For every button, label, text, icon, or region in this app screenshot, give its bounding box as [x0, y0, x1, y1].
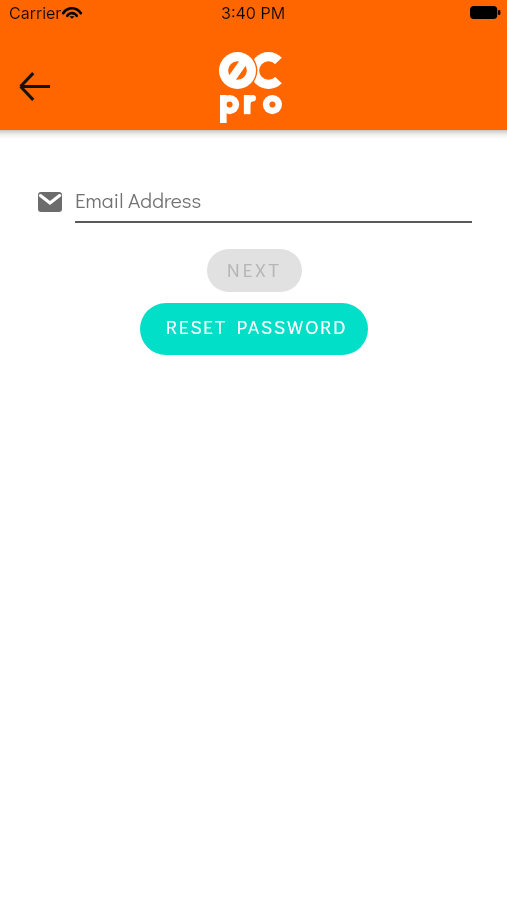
staticText: 3:40 PM — [221, 3, 286, 22]
staticText: NEXT — [227, 257, 282, 282]
button[interactable]: Navigate back — [10, 62, 58, 110]
staticText: Carrier — [9, 3, 62, 22]
staticText: RESET PASSWORD — [166, 314, 348, 339]
button[interactable]: NEXT — [207, 249, 302, 292]
button[interactable]: RESET PASSWORD — [140, 303, 368, 355]
staticText: Email Address — [75, 186, 202, 214]
